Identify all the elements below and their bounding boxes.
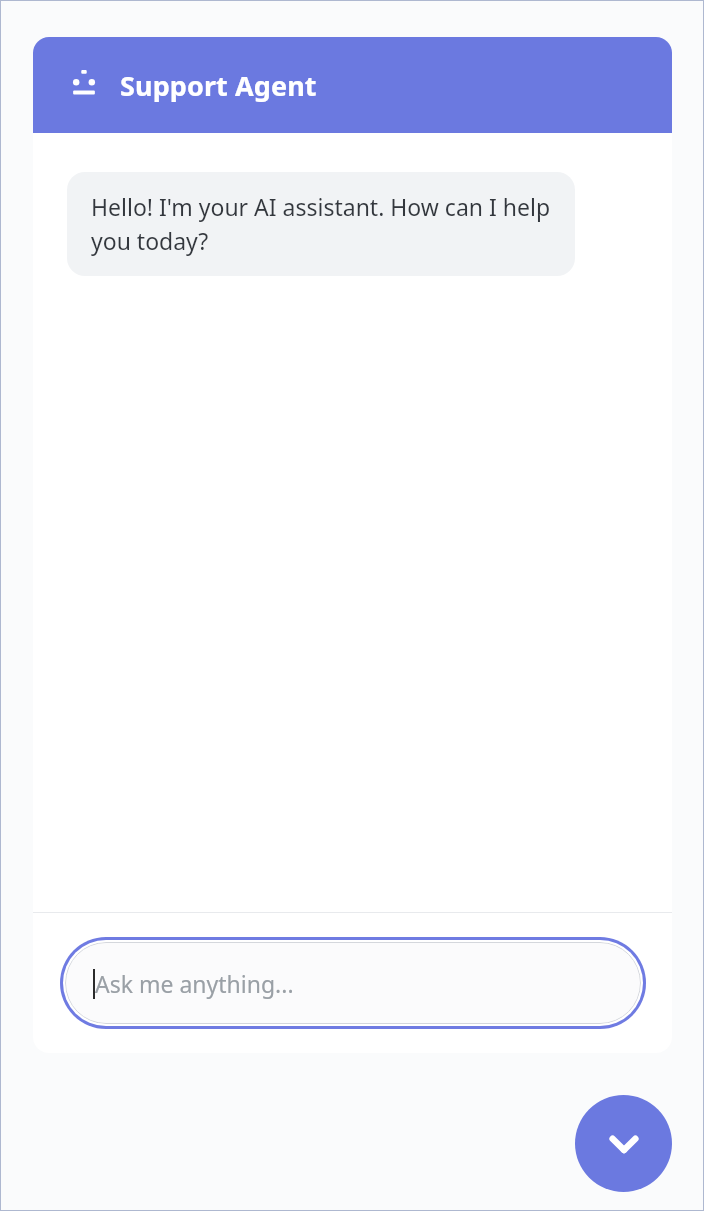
staticText: Ask me anything... — [95, 968, 294, 999]
staticText: Hello! I'm your AI assistant. How can I … — [91, 191, 551, 257]
other: Assistant avatar — [67, 68, 101, 102]
button[interactable]: Hello! I'm your AI assistant. How can I … — [67, 172, 575, 276]
button[interactable]: Ask me anything... — [65, 942, 641, 1024]
button[interactable]: Assistant avatar — [33, 37, 672, 133]
staticText: Support Agent — [120, 67, 317, 104]
button[interactable]: Collapse chat — [575, 1095, 672, 1192]
